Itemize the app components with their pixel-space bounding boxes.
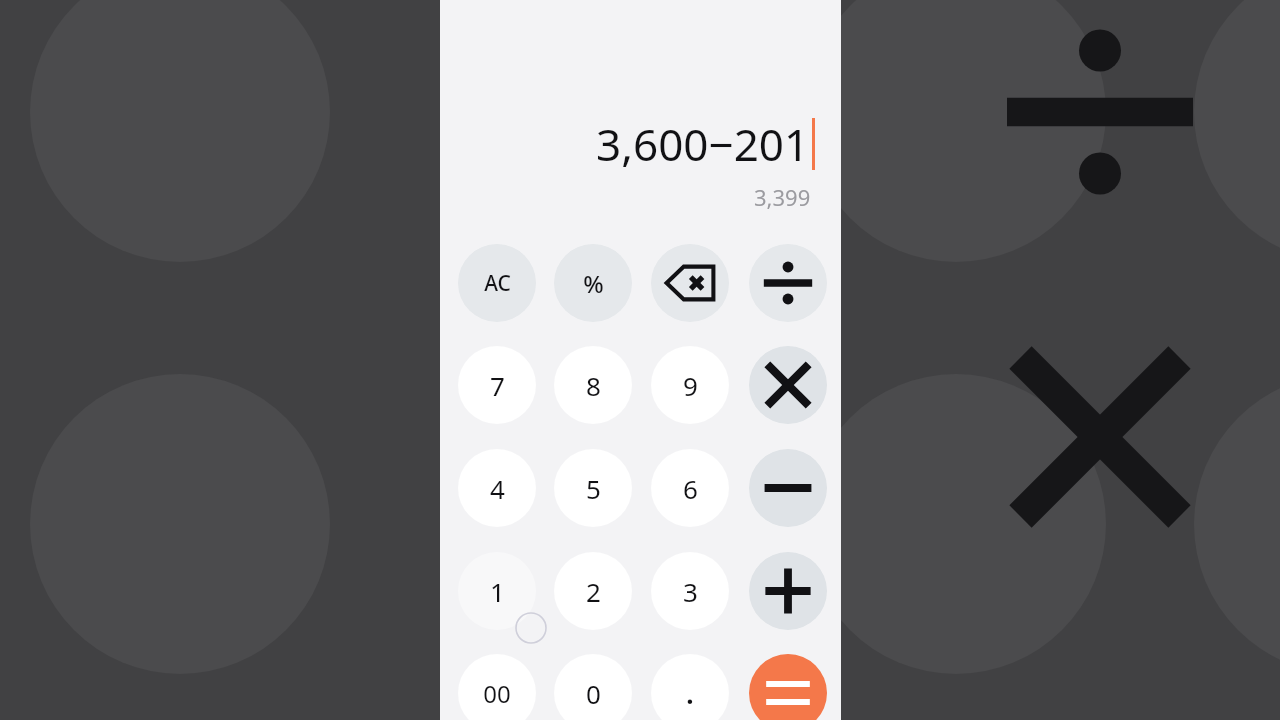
- button[interactable]: 2: [554, 552, 632, 630]
- button[interactable]: AC: [458, 244, 536, 322]
- staticText: 0: [586, 676, 601, 711]
- button[interactable]: 3: [651, 552, 729, 630]
- staticText: %: [583, 267, 604, 300]
- staticText: 9: [683, 368, 698, 403]
- staticText: AC: [484, 269, 511, 298]
- staticText: 7: [490, 368, 505, 403]
- button[interactable]: 7: [458, 346, 536, 424]
- button[interactable]: 5: [554, 449, 632, 527]
- button[interactable]: Equals: [749, 654, 827, 720]
- staticText: 2: [586, 574, 601, 609]
- button[interactable]: 1: [458, 552, 536, 630]
- staticText: 3,399: [754, 182, 811, 212]
- staticText: 00: [483, 677, 511, 710]
- button[interactable]: 0: [554, 654, 632, 720]
- staticText: 1: [490, 574, 505, 609]
- staticText: 6: [683, 471, 698, 506]
- button[interactable]: Subtract: [749, 449, 827, 527]
- staticText: .: [686, 676, 694, 711]
- button[interactable]: .: [651, 654, 729, 720]
- staticText: 3,600−201: [596, 114, 810, 174]
- staticText: 8: [586, 368, 601, 403]
- button[interactable]: Backspace: [651, 244, 729, 322]
- button[interactable]: 00: [458, 654, 536, 720]
- button[interactable]: 4: [458, 449, 536, 527]
- button[interactable]: Multiply: [749, 346, 827, 424]
- staticText: 5: [586, 471, 601, 506]
- button[interactable]: 6: [651, 449, 729, 527]
- staticText: 3: [683, 574, 698, 609]
- staticText: 4: [490, 471, 505, 506]
- button[interactable]: %: [554, 244, 632, 322]
- button[interactable]: 8: [554, 346, 632, 424]
- button[interactable]: Add: [749, 552, 827, 630]
- button[interactable]: 9: [651, 346, 729, 424]
- button[interactable]: Divide: [749, 244, 827, 322]
